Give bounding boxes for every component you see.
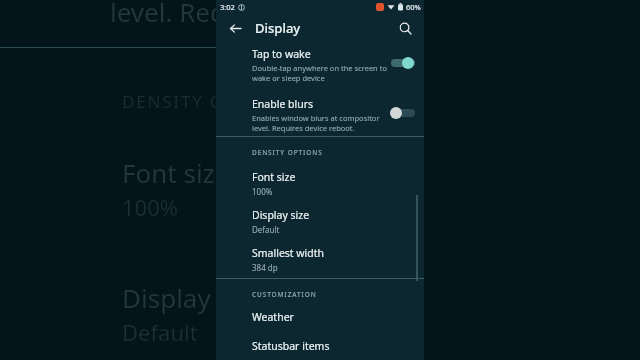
staticText: level. Req <box>110 0 226 29</box>
staticText: level. Requires device reboot. <box>252 123 355 133</box>
button[interactable]: Smallest width <box>216 244 424 276</box>
staticText: Font size <box>122 155 230 190</box>
button[interactable]: Display size <box>216 206 424 238</box>
staticText: 100% <box>122 192 179 222</box>
button[interactable]: Enable blurs <box>216 94 424 140</box>
staticText: CUSTOMIZATION <box>252 290 317 299</box>
staticText: 100% <box>252 186 273 197</box>
button[interactable]: Off <box>390 106 416 120</box>
button[interactable]: On <box>390 56 416 70</box>
button[interactable]: Tap to wake <box>216 44 424 90</box>
staticText: 384 dp <box>252 262 278 273</box>
staticText: Display <box>255 19 301 37</box>
staticText: Display size <box>252 208 310 222</box>
button[interactable]: Font size <box>216 168 424 200</box>
staticText: Weather <box>252 310 294 324</box>
staticText: DENSITY O <box>122 90 225 113</box>
button[interactable]: Statusbar items <box>216 337 424 360</box>
staticText: DENSITY OPTIONS <box>252 148 323 157</box>
staticText: Statusbar items <box>252 339 330 353</box>
staticText: 60% <box>406 2 421 12</box>
staticText: Default <box>122 317 198 347</box>
staticText: Enables window blurs at compositor <box>252 113 380 123</box>
button[interactable]: Back <box>222 15 248 41</box>
staticText: Display s <box>122 280 230 315</box>
staticText: Font size <box>252 170 296 184</box>
staticText: Tap to wake <box>252 47 311 61</box>
staticText: wake or sleep device <box>252 73 325 83</box>
staticText: Default <box>252 224 280 235</box>
staticText: Smallest width <box>252 246 325 260</box>
button[interactable]: Weather <box>216 308 424 334</box>
staticText: 3:02 <box>220 2 235 12</box>
button[interactable]: Search <box>392 15 418 41</box>
staticText: Enable blurs <box>252 97 314 111</box>
staticText: Double-tap anywhere on the screen to <box>252 63 387 73</box>
